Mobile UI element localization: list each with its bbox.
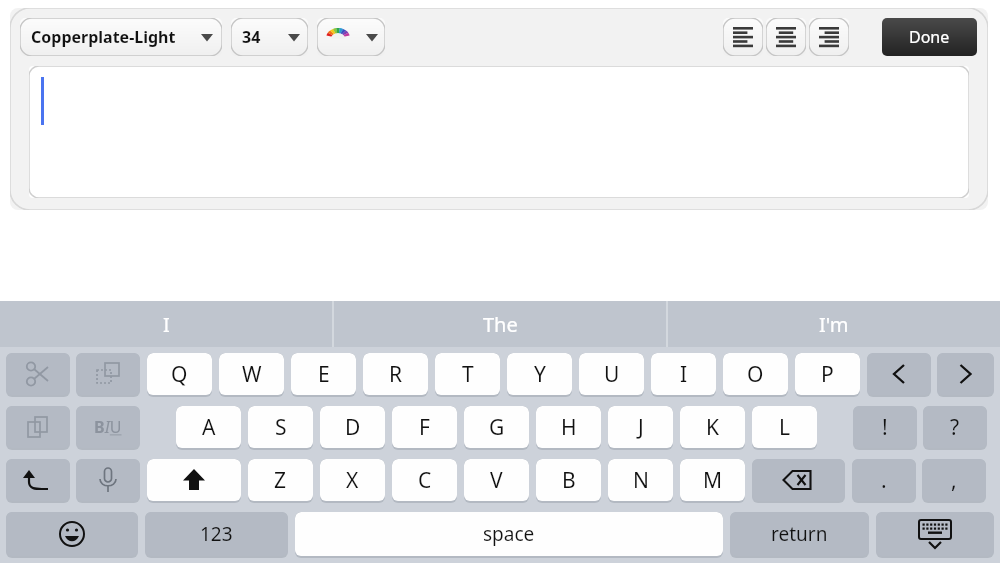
staticText: L: [779, 413, 791, 442]
button[interactable]: Dictate: [76, 459, 140, 501]
button[interactable]: K: [680, 406, 745, 448]
button[interactable]: 34: [231, 18, 308, 56]
button[interactable]: P: [795, 353, 860, 395]
staticText: BIU: [94, 416, 122, 438]
button[interactable]: Bold italic underline: [76, 406, 140, 448]
button[interactable]: E: [291, 353, 356, 395]
button[interactable]: I: [651, 353, 716, 395]
button[interactable]: G: [464, 406, 529, 448]
staticText: .: [881, 466, 887, 495]
staticText: A: [202, 413, 216, 442]
staticText: 34: [242, 26, 261, 48]
button[interactable]: V: [464, 459, 529, 501]
staticText: G: [489, 413, 505, 442]
button[interactable]: !: [853, 406, 917, 448]
staticText: !: [882, 413, 888, 442]
button[interactable]: Paste: [6, 406, 70, 448]
button[interactable]: Align right: [809, 18, 849, 56]
button[interactable]: Next: [937, 353, 994, 395]
button[interactable]: ?: [923, 406, 987, 448]
button[interactable]: Text colour: [317, 18, 385, 56]
button[interactable]: N: [608, 459, 673, 501]
button[interactable]: Cut: [6, 353, 70, 395]
staticText: P: [821, 360, 834, 389]
button[interactable]: Y: [507, 353, 572, 395]
button[interactable]: [29, 66, 969, 198]
staticText: ,: [951, 466, 957, 495]
button[interactable]: Shift: [147, 459, 241, 501]
button[interactable]: Z: [248, 459, 313, 501]
staticText: V: [490, 466, 503, 495]
button[interactable]: Backspace: [752, 459, 845, 501]
staticText: X: [346, 466, 359, 495]
staticText: Copperplate-Light: [31, 26, 176, 48]
button[interactable]: Align left: [723, 18, 763, 56]
staticText: E: [318, 360, 330, 389]
button[interactable]: return: [730, 512, 869, 556]
button[interactable]: I'm: [668, 301, 1000, 347]
button[interactable]: space: [295, 512, 723, 556]
button[interactable]: I: [0, 301, 332, 347]
staticText: F: [419, 413, 430, 442]
button[interactable]: S: [248, 406, 313, 448]
staticText: I'm: [819, 311, 849, 338]
staticText: J: [638, 413, 644, 442]
button[interactable]: ,: [922, 459, 986, 501]
button[interactable]: H: [536, 406, 601, 448]
staticText: U: [604, 360, 620, 389]
button[interactable]: Undo: [6, 459, 70, 501]
staticText: space: [483, 521, 535, 547]
button[interactable]: R: [363, 353, 428, 395]
staticText: Q: [171, 360, 188, 389]
button[interactable]: Emoji: [6, 512, 138, 556]
button[interactable]: Done: [882, 18, 977, 56]
staticText: Done: [909, 26, 950, 48]
staticText: B: [562, 466, 576, 495]
button[interactable]: Copperplate-Light: [20, 18, 222, 56]
button[interactable]: F: [392, 406, 457, 448]
button[interactable]: D: [320, 406, 385, 448]
button[interactable]: Align center: [766, 18, 806, 56]
staticText: I: [680, 360, 688, 389]
staticText: Y: [534, 360, 546, 389]
button[interactable]: M: [680, 459, 745, 501]
staticText: O: [747, 360, 764, 389]
button[interactable]: U: [579, 353, 644, 395]
button[interactable]: .: [852, 459, 916, 501]
staticText: C: [418, 466, 432, 495]
button[interactable]: X: [320, 459, 385, 501]
button[interactable]: The: [334, 301, 666, 347]
button[interactable]: Copy: [76, 353, 140, 395]
button[interactable]: J: [608, 406, 673, 448]
button[interactable]: L: [752, 406, 817, 448]
staticText: M: [703, 466, 723, 495]
staticText: R: [389, 360, 403, 389]
staticText: 123: [200, 521, 233, 547]
button[interactable]: Previous: [867, 353, 931, 395]
button[interactable]: T: [435, 353, 500, 395]
staticText: S: [275, 413, 287, 442]
staticText: ?: [950, 413, 960, 442]
button[interactable]: O: [723, 353, 788, 395]
staticText: D: [345, 413, 361, 442]
staticText: The: [483, 311, 518, 338]
button[interactable]: Q: [147, 353, 212, 395]
button[interactable]: Hide keyboard: [876, 512, 994, 556]
button[interactable]: C: [392, 459, 457, 501]
staticText: I: [163, 311, 170, 338]
staticText: N: [633, 466, 649, 495]
button[interactable]: B: [536, 459, 601, 501]
staticText: T: [462, 360, 474, 389]
button[interactable]: 123: [145, 512, 288, 556]
staticText: H: [561, 413, 577, 442]
staticText: return: [771, 521, 828, 547]
staticText: W: [242, 360, 262, 389]
button[interactable]: W: [219, 353, 284, 395]
button[interactable]: A: [176, 406, 241, 448]
staticText: Z: [274, 466, 287, 495]
staticText: K: [706, 413, 719, 442]
